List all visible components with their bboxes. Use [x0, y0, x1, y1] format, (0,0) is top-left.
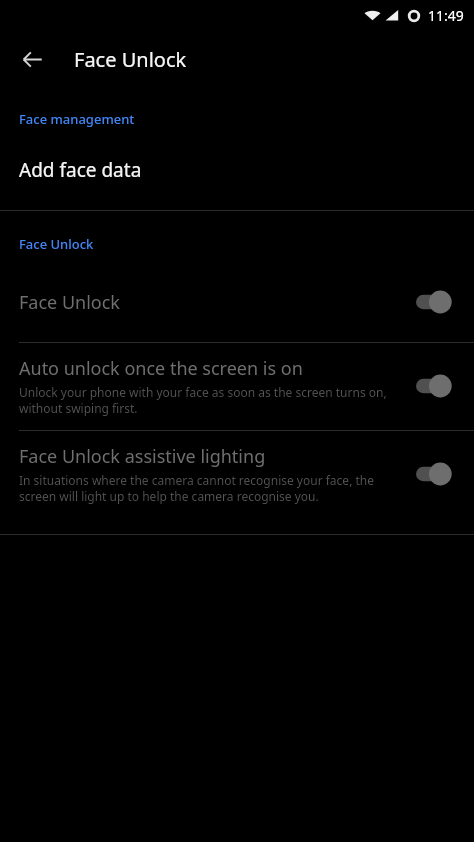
staticText: Face management — [19, 110, 135, 128]
staticText: 11:49 — [428, 6, 464, 25]
staticText: Auto unlock once the screen is on — [19, 356, 303, 381]
staticText: Unlock your phone with your face as soon… — [19, 384, 402, 416]
button[interactable]: Add face data — [0, 154, 474, 186]
button[interactable]: Toggle — [416, 371, 462, 401]
staticText: Face Unlock — [19, 290, 120, 315]
button[interactable]: Toggle — [416, 459, 462, 489]
staticText: Add face data — [19, 157, 142, 183]
staticText: Face Unlock — [74, 46, 187, 73]
button[interactable]: Auto unlock once the screen is on — [0, 343, 474, 430]
staticText: Face Unlock — [19, 235, 94, 253]
button[interactable]: Face Unlock — [0, 274, 474, 331]
button[interactable]: Face Unlock assistive lighting — [0, 431, 474, 518]
staticText: In situations where the camera cannot re… — [19, 472, 402, 504]
button[interactable]: Toggle — [416, 287, 462, 317]
button[interactable]: Back — [10, 37, 54, 81]
staticText: Face Unlock assistive lighting — [19, 444, 266, 469]
